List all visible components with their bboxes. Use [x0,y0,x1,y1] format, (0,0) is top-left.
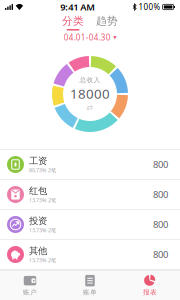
staticText: 80.73% 2笔 [29,167,56,174]
staticText: 13.73% 2笔 [29,197,56,204]
button[interactable]: 账户 [0,271,60,299]
staticText: 分类 [62,14,84,27]
staticText: 13.73% 2笔 [29,227,56,234]
staticText: 工资 [29,155,47,167]
button[interactable]: 工资 [0,150,180,179]
button[interactable]: 账单 [60,271,120,299]
button[interactable]: 其他 [0,240,180,269]
staticText: 13.73% 2笔 [29,257,56,264]
staticText: 账户 [23,288,37,296]
staticText: ▾ [113,33,116,41]
staticText: ⇄ [86,103,93,112]
staticText: 800 [153,158,168,171]
button[interactable]: 投资 [0,210,180,239]
button[interactable]: 红包 [0,180,180,209]
staticText: 其他 [29,245,47,257]
staticText: 800 [153,218,168,231]
button[interactable]: 报表 [120,271,180,299]
staticText: 趋势 [96,14,118,27]
staticText: 800 [153,248,168,261]
staticText: 总收入 [79,76,100,84]
staticText: 9:41 AM [60,1,95,13]
staticText: 账单 [83,288,97,296]
button[interactable]: 分类 [62,14,84,30]
button[interactable]: 04.01-04.30 [64,31,116,44]
button[interactable]: 趋势 [96,14,118,30]
staticText: 红包 [29,185,47,197]
staticText: 04.01-04.30 [64,32,111,43]
staticText: 投资 [29,215,47,227]
staticText: 800 [153,188,168,201]
staticText: 100% [139,2,161,12]
staticText: 报表 [143,288,157,296]
staticText: 18000 [70,85,110,102]
